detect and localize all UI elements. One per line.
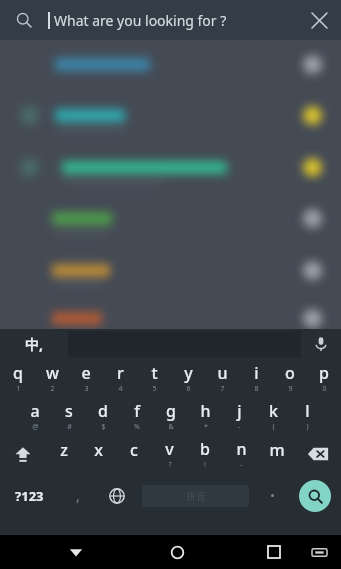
staticText: 3: [84, 384, 89, 394]
staticText: n: [236, 438, 247, 460]
button[interactable]: u: [205, 359, 239, 397]
staticText: j: [237, 400, 242, 422]
staticText: 8: [254, 384, 259, 394]
staticText: ?: [168, 460, 172, 470]
staticText: c: [130, 439, 138, 461]
staticText: z: [60, 439, 68, 461]
button[interactable]: l: [290, 397, 324, 435]
staticText: v: [165, 438, 174, 460]
staticText: k: [269, 400, 278, 422]
button[interactable]: h: [188, 397, 222, 435]
staticText: u: [217, 362, 228, 384]
staticText: ,: [76, 486, 80, 505]
staticText: h: [200, 400, 211, 422]
staticText: b: [200, 438, 210, 460]
staticText: e: [81, 362, 91, 384]
button[interactable]: i: [239, 359, 273, 397]
staticText: y: [184, 362, 193, 384]
button[interactable]: p: [307, 359, 341, 397]
button[interactable]: b: [187, 435, 223, 473]
staticText: !: [204, 460, 206, 470]
button[interactable]: y: [171, 359, 205, 397]
button[interactable]: Search: [289, 473, 341, 518]
button[interactable]: o: [273, 359, 307, 397]
button[interactable]: j: [222, 397, 256, 435]
staticText: (: [272, 422, 275, 432]
button[interactable]: t: [137, 359, 171, 397]
button[interactable]: k: [256, 397, 290, 435]
staticText: d: [98, 400, 108, 422]
staticText: l: [305, 400, 310, 422]
button[interactable]: v: [151, 435, 187, 473]
staticText: ?123: [15, 487, 44, 505]
button[interactable]: a: [17, 397, 52, 435]
staticText: i: [254, 362, 259, 384]
button[interactable]: f: [120, 397, 154, 435]
staticText: &: [168, 422, 174, 432]
button[interactable]: Shift: [0, 435, 46, 473]
button[interactable]: s: [52, 397, 86, 435]
staticText: 拼音: [186, 490, 206, 503]
staticText: 7: [220, 384, 225, 394]
button[interactable]: q: [0, 359, 35, 397]
button[interactable]: Recent apps: [251, 535, 297, 569]
button[interactable]: Search: [0, 0, 48, 40]
button[interactable]: 中,: [0, 329, 68, 359]
button[interactable]: Hide keyboard: [297, 535, 341, 569]
staticText: 9: [288, 384, 293, 394]
staticText: 5: [152, 384, 157, 394]
staticText: 中,: [25, 335, 43, 354]
button[interactable]: ,: [58, 473, 98, 518]
button[interactable]: c: [116, 435, 151, 473]
staticText: w: [46, 362, 59, 384]
button[interactable]: Voice input: [301, 329, 341, 359]
staticText: p: [319, 362, 329, 384]
staticText: 1: [16, 384, 21, 394]
button[interactable]: w: [35, 359, 69, 397]
staticText: a: [30, 400, 40, 422]
staticText: 0: [322, 384, 327, 394]
staticText: %: [134, 422, 140, 432]
button[interactable]: [255, 473, 289, 518]
staticText: *: [204, 422, 208, 432]
button[interactable]: Clear search: [297, 0, 341, 40]
button[interactable]: Home: [149, 535, 205, 569]
staticText: $: [101, 422, 106, 432]
staticText: #: [67, 422, 72, 432]
button[interactable]: e: [69, 359, 103, 397]
button[interactable]: d: [86, 397, 120, 435]
button[interactable]: Change keyboard language: [98, 473, 136, 518]
button[interactable]: m: [259, 435, 295, 473]
staticText: ): [306, 422, 309, 432]
button[interactable]: z: [46, 435, 81, 473]
button[interactable]: Back: [48, 535, 104, 569]
staticText: s: [65, 400, 73, 422]
staticText: 6: [186, 384, 191, 394]
button[interactable]: r: [103, 359, 137, 397]
button[interactable]: x: [81, 435, 116, 473]
staticText: 4: [118, 384, 123, 394]
button[interactable]: Backspace: [295, 435, 341, 473]
staticText: x: [94, 439, 103, 461]
staticText: -: [240, 460, 243, 470]
staticText: What are you looking for ?: [54, 11, 227, 30]
staticText: t: [151, 362, 158, 384]
staticText: m: [269, 439, 285, 461]
staticText: r: [117, 362, 124, 384]
staticText: f: [134, 400, 140, 422]
button[interactable]: g: [154, 397, 188, 435]
staticText: o: [285, 362, 295, 384]
staticText: g: [166, 400, 176, 422]
button[interactable]: n: [223, 435, 259, 473]
staticText: 2: [50, 384, 55, 394]
staticText: -: [238, 422, 241, 432]
button[interactable]: ?123: [0, 473, 58, 518]
staticText: @: [32, 422, 39, 432]
staticText: q: [13, 362, 23, 384]
